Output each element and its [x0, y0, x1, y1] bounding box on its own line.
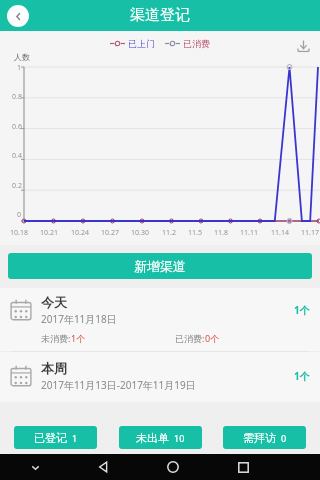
button[interactable]: Hide — [25, 457, 45, 477]
staticText: 新增渠道 — [134, 258, 186, 274]
staticText: 10 — [174, 432, 185, 444]
staticText: 0.6 — [12, 122, 22, 130]
staticText: 0 — [281, 432, 287, 444]
staticText: 10.24 — [71, 228, 89, 238]
staticText: 0个 — [205, 332, 220, 344]
staticText: 10.21 — [40, 228, 58, 238]
staticText: 本周 — [41, 360, 67, 376]
button[interactable]: 已登记 — [14, 426, 97, 449]
staticText: 0.2 — [12, 181, 22, 189]
staticText: 10.18 — [10, 228, 28, 238]
staticText: 已上门 — [128, 38, 155, 49]
staticText: 11.2 — [162, 228, 176, 238]
staticText: 已消费 — [183, 38, 210, 49]
staticText: 10.27 — [101, 228, 119, 238]
staticText: 1个 — [71, 332, 86, 344]
button[interactable]: 新增渠道 — [8, 253, 312, 279]
staticText: 渠道登记 — [130, 6, 190, 25]
button[interactable]: 今天 — [0, 288, 320, 351]
staticText: 人数 — [14, 52, 30, 62]
staticText: 今天 — [41, 294, 67, 310]
staticText: 0.4 — [12, 151, 22, 159]
staticText: 未出单 — [136, 431, 169, 445]
staticText: 1 — [72, 432, 78, 444]
button[interactable]: Recent apps — [232, 456, 254, 478]
staticText: 11.11 — [240, 228, 258, 238]
staticText: 11.17 — [301, 228, 319, 238]
staticText: 1个 — [294, 303, 310, 317]
button[interactable]: Download chart — [293, 36, 313, 56]
staticText: 需拜访 — [243, 431, 276, 445]
staticText: 0 — [17, 210, 22, 218]
staticText: 11.8 — [214, 228, 228, 238]
staticText: 11.14 — [271, 228, 289, 238]
button[interactable]: Home — [162, 456, 184, 478]
button[interactable]: 本周 — [0, 352, 320, 402]
staticText: 已登记 — [34, 431, 67, 445]
staticText: 2017年11月18日 — [41, 312, 117, 326]
staticText: 已消费: — [175, 332, 205, 344]
staticText: 11.5 — [188, 228, 202, 238]
button[interactable]: 未出单 — [119, 426, 202, 449]
staticText: 未消费: — [41, 332, 71, 344]
staticText: 2017年11月13日-2017年11月19日 — [41, 378, 196, 392]
staticText: 10.30 — [131, 228, 149, 238]
button[interactable]: 需拜访 — [223, 426, 306, 449]
staticText: 0.8 — [12, 92, 22, 100]
button[interactable]: Back — [7, 5, 29, 27]
button[interactable]: Back — [93, 456, 115, 478]
staticText: 1个 — [294, 369, 310, 383]
staticText: 1 — [17, 63, 22, 71]
